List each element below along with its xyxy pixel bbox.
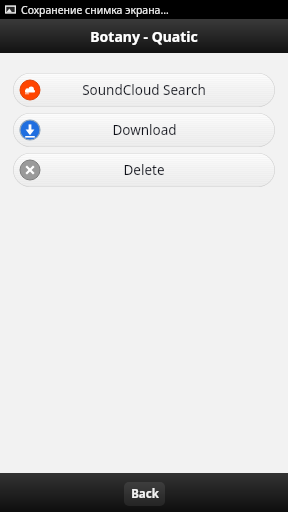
staticText: Download bbox=[112, 121, 177, 139]
staticText: SoundCloud Search bbox=[82, 81, 206, 99]
button[interactable]: Back bbox=[124, 482, 165, 506]
button[interactable]: Delete bbox=[13, 153, 275, 187]
staticText: Delete bbox=[123, 161, 165, 179]
button[interactable]: Download bbox=[13, 113, 275, 147]
button[interactable]: SoundCloud Search bbox=[13, 73, 275, 107]
staticText: Сохранение снимка экрана… bbox=[21, 3, 169, 17]
staticText: Back bbox=[131, 486, 159, 502]
staticText: Botany - Quatic bbox=[90, 27, 198, 46]
